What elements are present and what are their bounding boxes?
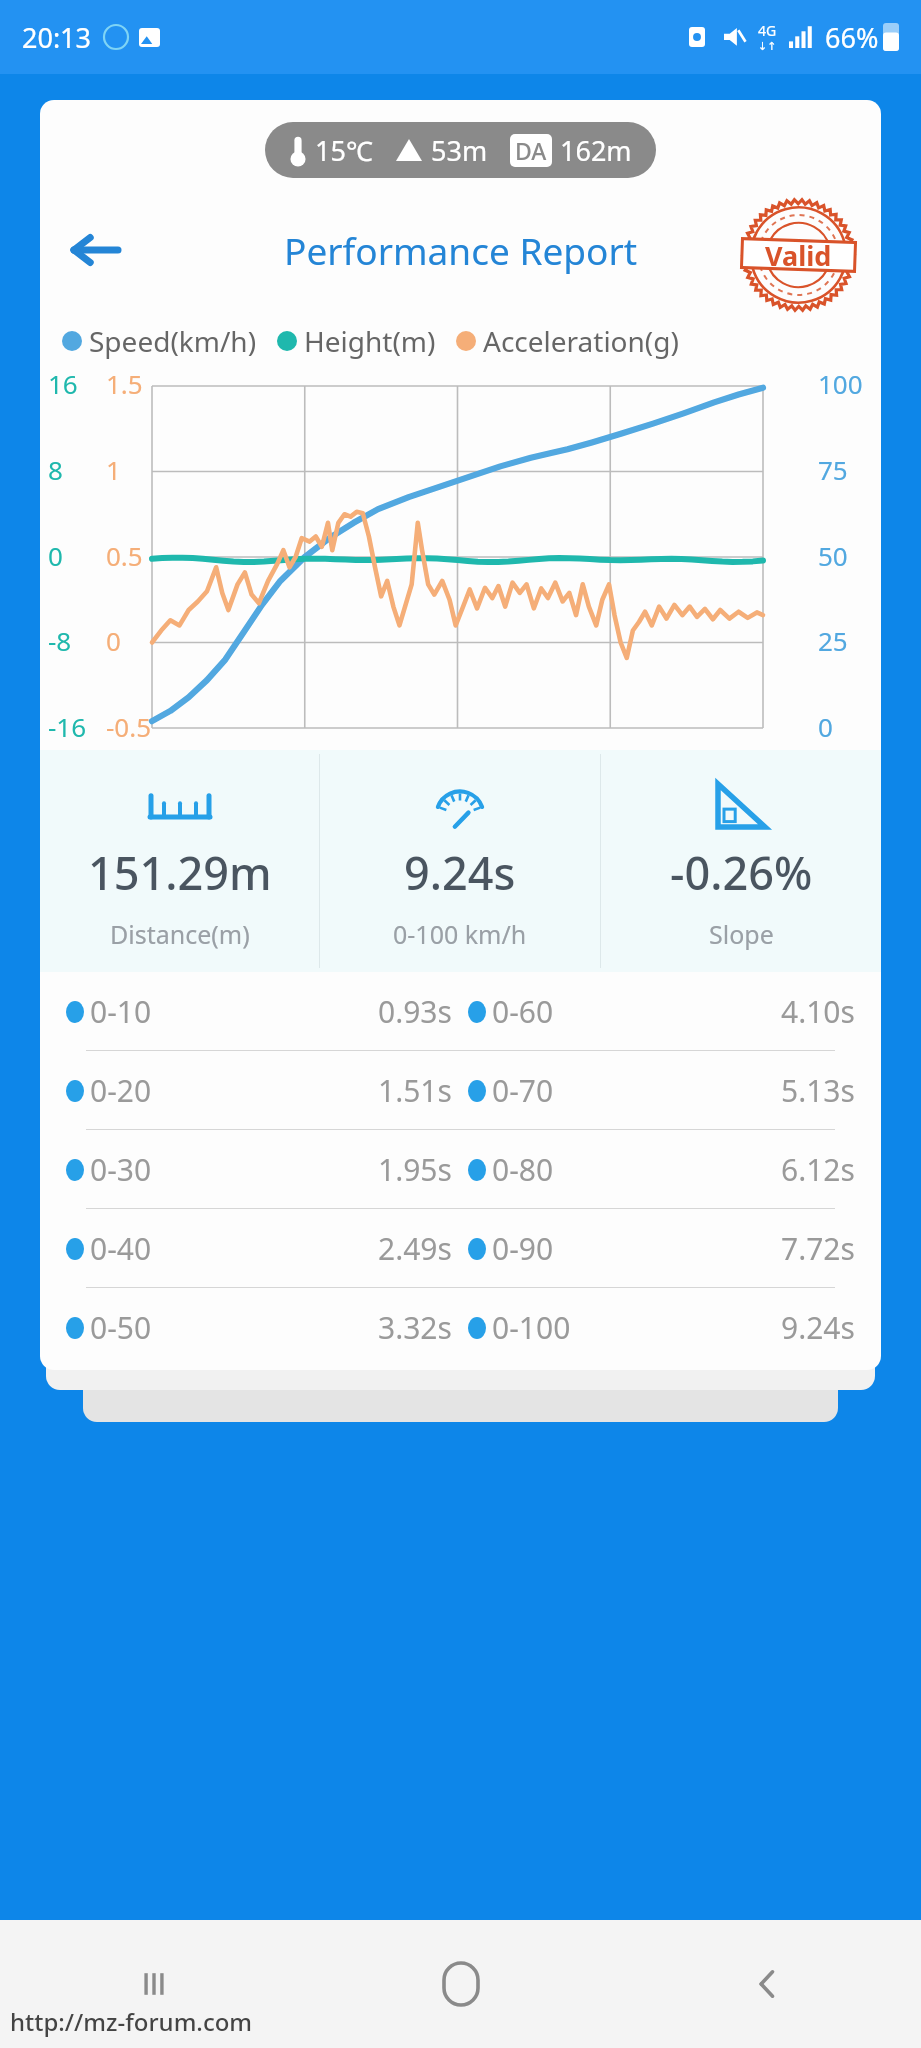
staticText: -0.5 [106,709,152,744]
staticText: 1.51s [378,1070,452,1111]
button[interactable]: 9.24s [320,750,600,972]
staticText: 5.13s [781,1070,855,1111]
staticText: 0-80 [492,1149,554,1190]
staticText: 0-20 [90,1070,152,1111]
staticText: Performance Report [284,225,638,275]
staticText: 151.29m [88,842,272,903]
staticText: -16 [48,709,87,744]
staticText: 0.5 [106,538,143,573]
staticText: 0 [818,709,833,744]
staticText: 0-50 [90,1307,152,1348]
staticText: 75 [818,452,848,487]
staticText: Acceleration(g) [483,322,679,360]
staticText: Speed(km/h) [89,322,257,360]
staticText: 6.12s [781,1149,855,1190]
staticText: 9.24s [404,842,516,903]
button[interactable]: Back [58,212,134,288]
button[interactable]: Recents [0,1920,307,2048]
staticText: 0.93s [378,991,452,1032]
staticText: ↓↑ [758,40,777,53]
button[interactable]: 0-20 [40,1051,881,1129]
button[interactable]: 0-50 [40,1288,881,1366]
staticText: 162m [560,132,632,169]
button[interactable]: 0-40 [40,1209,881,1287]
staticText: Slope [709,917,774,951]
staticText: 1.95s [378,1149,452,1190]
staticText: 0-40 [90,1228,152,1269]
staticText: 15℃ [315,132,373,169]
button[interactable]: -0.26% [601,750,881,972]
staticText: 50 [818,538,848,573]
staticText: http://mz-forum.com [10,2005,253,2038]
staticText: 3.32s [378,1307,452,1348]
staticText: 0 [106,623,121,658]
button[interactable]: 0-30 [40,1130,881,1208]
staticText: 20:13 [22,19,92,56]
staticText: 8 [48,452,63,487]
staticText: 7.72s [781,1228,855,1269]
staticText: 0-90 [492,1228,554,1269]
staticText: Height(m) [304,322,436,360]
staticText: Distance(m) [110,917,250,951]
staticText: 2.49s [378,1228,452,1269]
staticText: 0-100 km/h [393,917,527,951]
staticText: 0-30 [90,1149,152,1190]
button[interactable]: 15℃ [265,122,656,178]
staticText: DA [515,135,547,166]
staticText: 9.24s [781,1307,855,1348]
staticText: 0 [48,538,63,573]
staticText: 0-100 [492,1307,571,1348]
staticText: 100 [818,366,863,401]
staticText: 4.10s [781,991,855,1032]
staticText: 0-10 [90,991,152,1032]
staticText: 0-70 [492,1070,554,1111]
staticText: 0-60 [492,991,554,1032]
staticText: 25 [818,623,848,658]
staticText: 66% [825,19,879,56]
staticText: 4G [758,21,777,40]
staticText: 1.5 [106,366,143,401]
staticText: Valid [765,237,832,274]
button[interactable]: 151.29m [40,750,319,972]
staticText: 16 [48,366,78,401]
staticText: -8 [48,623,72,658]
button[interactable]: Home [307,1920,614,2048]
staticText: -0.26% [670,842,813,903]
button[interactable]: Back [614,1920,921,2048]
staticText: 53m [431,132,488,169]
staticText: 1 [106,452,121,487]
button[interactable]: 0-10 [40,972,881,1050]
